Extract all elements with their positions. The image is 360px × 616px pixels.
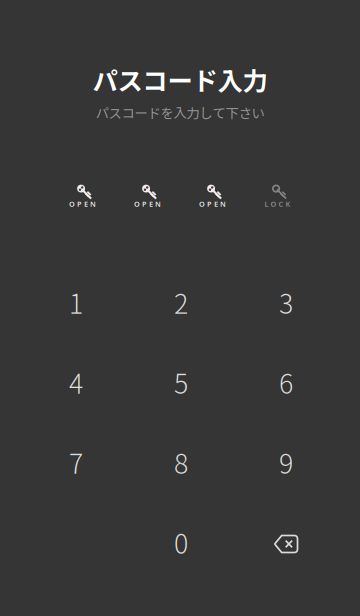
button[interactable]: 2 bbox=[128, 262, 233, 342]
staticText: 5 bbox=[174, 363, 188, 401]
staticText: パスコード入力 bbox=[92, 61, 267, 98]
staticText: O P E N bbox=[134, 199, 161, 209]
staticText: O P E N bbox=[69, 199, 96, 209]
staticText: 4 bbox=[69, 363, 83, 401]
staticText: 6 bbox=[279, 363, 293, 401]
button[interactable]: 4 bbox=[23, 342, 128, 422]
button[interactable]: 5 bbox=[128, 342, 233, 422]
staticText: O P E N bbox=[199, 199, 226, 209]
button[interactable]: 7 bbox=[23, 422, 128, 502]
button[interactable]: 6 bbox=[233, 342, 338, 422]
staticText: 9 bbox=[279, 443, 293, 481]
button[interactable]: 1 bbox=[23, 262, 128, 342]
staticText: 3 bbox=[279, 283, 293, 321]
button[interactable]: 9 bbox=[233, 422, 338, 502]
staticText: 2 bbox=[174, 283, 188, 321]
button[interactable]: 8 bbox=[128, 422, 233, 502]
staticText: パスコードを入力して下さい bbox=[95, 103, 264, 122]
staticText: 1 bbox=[69, 283, 83, 321]
staticText: 8 bbox=[174, 443, 188, 481]
staticText: L O C K bbox=[264, 199, 290, 209]
staticText: 0 bbox=[174, 523, 188, 561]
button[interactable]: 0 bbox=[128, 502, 233, 582]
button[interactable]: Delete bbox=[233, 502, 338, 582]
staticText: 7 bbox=[69, 443, 83, 481]
button[interactable]: 3 bbox=[233, 262, 338, 342]
